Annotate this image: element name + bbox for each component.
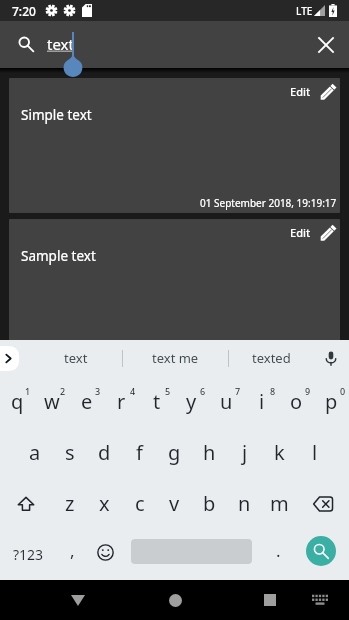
- staticText: t: [153, 388, 161, 415]
- staticText: 01 September 2018, 19:19:17: [200, 196, 337, 210]
- button[interactable]: y: [174, 376, 209, 427]
- button[interactable]: Backspace: [297, 478, 349, 529]
- button[interactable]: Edit: [290, 83, 337, 100]
- staticText: z: [65, 490, 75, 517]
- button[interactable]: i: [244, 376, 279, 427]
- button[interactable]: a: [17, 427, 52, 478]
- button[interactable]: More suggestions: [0, 346, 19, 371]
- staticText: i: [259, 388, 265, 415]
- button[interactable]: e: [69, 376, 104, 427]
- staticText: c: [135, 490, 145, 517]
- staticText: ,: [70, 539, 75, 562]
- staticText: q: [11, 388, 24, 415]
- button[interactable]: Edit: [290, 224, 337, 241]
- button[interactable]: m: [262, 478, 297, 529]
- button[interactable]: Shift: [0, 478, 52, 529]
- button[interactable]: Switch keyboard: [298, 580, 342, 620]
- staticText: k: [274, 439, 285, 466]
- staticText: 8: [270, 385, 276, 397]
- staticText: g: [168, 439, 181, 466]
- staticText: j: [242, 439, 248, 466]
- button[interactable]: v: [157, 478, 192, 529]
- staticText: text: [64, 349, 88, 367]
- staticText: v: [169, 490, 180, 517]
- button[interactable]: q: [0, 376, 34, 427]
- staticText: w: [44, 388, 60, 415]
- button[interactable]: k: [262, 427, 297, 478]
- button[interactable]: Clear search: [306, 25, 346, 65]
- staticText: 7: [235, 385, 241, 397]
- button[interactable]: g: [157, 427, 192, 478]
- staticText: a: [29, 439, 41, 466]
- button[interactable]: texted: [229, 340, 313, 376]
- staticText: 1: [25, 385, 31, 397]
- staticText: ?123: [13, 545, 44, 564]
- button[interactable]: z: [52, 478, 87, 529]
- button[interactable]: text: [29, 340, 122, 376]
- button[interactable]: Emoji: [88, 529, 122, 580]
- button[interactable]: x: [87, 478, 122, 529]
- button[interactable]: Close keyboard: [48, 580, 108, 620]
- staticText: Sample text: [21, 247, 96, 265]
- staticText: Edit: [290, 84, 311, 99]
- button[interactable]: text me: [123, 340, 228, 376]
- button[interactable]: Edit: [9, 78, 340, 213]
- staticText: 0: [340, 385, 346, 397]
- button[interactable]: Home: [145, 580, 205, 620]
- staticText: 7:20: [12, 3, 36, 19]
- button[interactable]: Edit: [9, 219, 340, 354]
- staticText: u: [220, 388, 233, 415]
- other: Edit note: [320, 224, 337, 241]
- staticText: 2: [60, 385, 66, 397]
- button[interactable]: r: [104, 376, 139, 427]
- button[interactable]: o: [279, 376, 314, 427]
- button[interactable]: Search: [306, 536, 336, 566]
- button[interactable]: w: [34, 376, 69, 427]
- staticText: x: [99, 490, 110, 517]
- button[interactable]: ,: [56, 529, 88, 580]
- button[interactable]: h: [192, 427, 227, 478]
- staticText: h: [203, 439, 216, 466]
- button[interactable]: Voice input: [313, 340, 349, 376]
- staticText: o: [290, 388, 303, 415]
- staticText: f: [136, 439, 143, 466]
- button[interactable]: l: [297, 427, 332, 478]
- staticText: d: [98, 439, 111, 466]
- staticText: texted: [252, 349, 291, 367]
- button[interactable]: j: [227, 427, 262, 478]
- staticText: .: [276, 539, 281, 562]
- button[interactable]: n: [227, 478, 262, 529]
- button[interactable]: u: [209, 376, 244, 427]
- staticText: text me: [152, 349, 199, 367]
- button[interactable]: f: [122, 427, 157, 478]
- staticText: b: [203, 490, 216, 517]
- button[interactable]: d: [87, 427, 122, 478]
- staticText: LTE: [296, 4, 313, 18]
- staticText: text: [47, 34, 74, 54]
- staticText: Simple text: [21, 106, 92, 124]
- other: Edit note: [320, 83, 337, 100]
- staticText: 6: [200, 385, 206, 397]
- staticText: y: [186, 388, 197, 415]
- staticText: s: [65, 439, 75, 466]
- staticText: 5: [165, 385, 171, 397]
- button[interactable]: .: [262, 529, 294, 580]
- staticText: 9: [305, 385, 311, 397]
- staticText: e: [81, 388, 93, 415]
- staticText: 4: [130, 385, 136, 397]
- staticText: 3: [95, 385, 101, 397]
- button[interactable]: Search: [11, 29, 41, 59]
- staticText: m: [270, 490, 289, 517]
- staticText: Edit: [290, 225, 311, 240]
- button[interactable]: ?123: [0, 529, 56, 580]
- button[interactable]: b: [192, 478, 227, 529]
- button[interactable]: t: [139, 376, 174, 427]
- button[interactable]: c: [122, 478, 157, 529]
- button[interactable]: Recent apps: [240, 580, 300, 620]
- button[interactable]: s: [52, 427, 87, 478]
- button[interactable]: p: [314, 376, 349, 427]
- staticText: p: [325, 388, 338, 415]
- staticText: n: [238, 490, 251, 517]
- staticText: r: [117, 388, 126, 415]
